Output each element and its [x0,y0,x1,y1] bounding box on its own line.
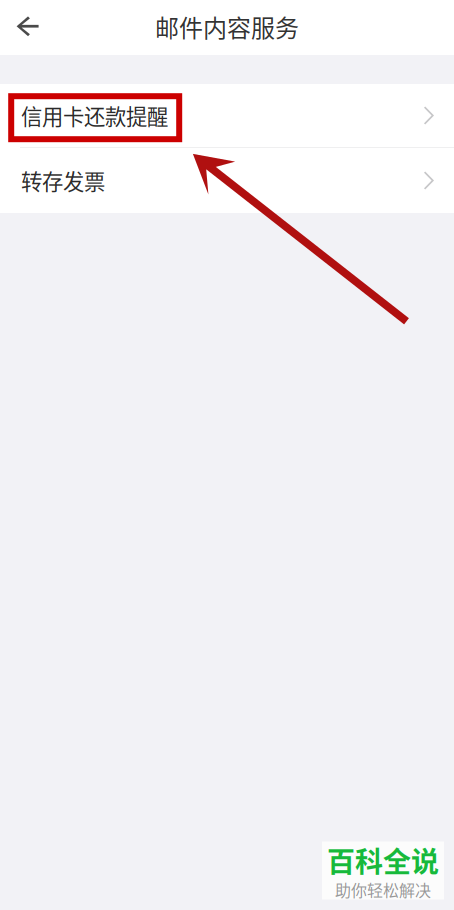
staticText: 邮件内容服务 [155,9,299,44]
staticText: 信用卡还款提醒 [21,100,168,131]
staticText: 百科全说 [327,840,439,880]
button[interactable]: Back [0,0,56,55]
staticText: 助你轻松解决 [335,878,431,901]
button[interactable]: 信用卡还款提醒 [0,84,454,147]
button[interactable]: 转存发票 [0,148,454,213]
staticText: 转存发票 [21,165,105,196]
